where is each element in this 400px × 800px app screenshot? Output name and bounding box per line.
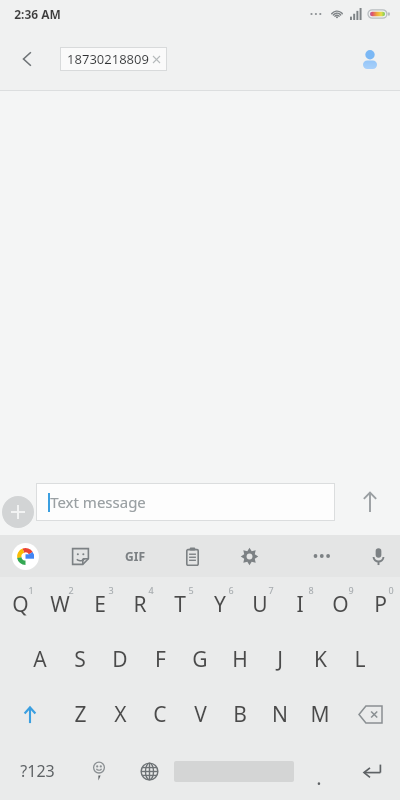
button[interactable]: K <box>300 632 340 687</box>
button[interactable]: W <box>40 577 80 632</box>
button[interactable]: Back <box>6 37 50 81</box>
staticText: X <box>114 700 127 729</box>
button[interactable]: Change language <box>124 742 174 800</box>
staticText: K <box>314 645 327 674</box>
button[interactable]: GIF <box>118 535 152 577</box>
staticText: G <box>192 645 208 674</box>
button[interactable]: Stickers <box>64 535 96 577</box>
button[interactable]: Settings <box>233 535 265 577</box>
button[interactable]: N <box>260 687 300 742</box>
staticText: J <box>277 645 283 674</box>
staticText: 18730218809 <box>67 50 149 68</box>
staticText: 2:36 AM <box>14 6 61 22</box>
staticText: 7 <box>268 584 274 596</box>
staticText: 0 <box>388 584 394 596</box>
button[interactable]: O <box>320 577 360 632</box>
staticText: Z <box>74 700 87 729</box>
button[interactable]: Contacts <box>348 37 392 81</box>
staticText: S <box>74 645 86 674</box>
button[interactable]: I <box>280 577 320 632</box>
button[interactable]: B <box>220 687 260 742</box>
button[interactable]: C <box>140 687 180 742</box>
staticText: F <box>155 645 166 674</box>
button[interactable]: More options <box>306 535 338 577</box>
staticText: 9 <box>348 584 354 596</box>
button[interactable]: A <box>20 632 60 687</box>
button[interactable]: Z <box>60 687 100 742</box>
button[interactable]: Space <box>174 742 294 800</box>
button[interactable]: J <box>260 632 300 687</box>
staticText: Y <box>214 590 226 619</box>
button[interactable]: Text message <box>36 483 335 521</box>
staticText: Text message <box>50 492 146 512</box>
staticText: GIF <box>125 548 145 564</box>
staticText: V <box>194 700 207 729</box>
button[interactable]: R <box>120 577 160 632</box>
staticText: 4 <box>148 584 154 596</box>
staticText: C <box>153 700 167 729</box>
staticText: L <box>354 645 366 674</box>
button[interactable]: . <box>294 742 344 800</box>
button[interactable]: T <box>160 577 200 632</box>
staticText: W <box>50 590 70 619</box>
staticText: H <box>232 645 248 674</box>
staticText: 5 <box>188 584 194 596</box>
button[interactable]: S <box>60 632 100 687</box>
staticText: E <box>94 590 106 619</box>
button[interactable]: Q <box>0 577 40 632</box>
button[interactable]: 18730218809 <box>60 47 167 71</box>
button[interactable]: ?123 <box>0 742 74 800</box>
staticText: M <box>310 700 330 729</box>
button[interactable]: Voice input <box>362 535 394 577</box>
button[interactable]: P <box>360 577 400 632</box>
staticText: P <box>374 590 387 619</box>
staticText: N <box>272 700 288 729</box>
button[interactable]: V <box>180 687 220 742</box>
button[interactable]: U <box>240 577 280 632</box>
staticText: 6 <box>228 584 234 596</box>
staticText: 1 <box>28 584 34 596</box>
button[interactable]: Emoji and comma <box>74 742 124 800</box>
staticText: 8 <box>308 584 314 596</box>
button[interactable]: Enter <box>344 742 400 800</box>
staticText: ?123 <box>20 760 55 782</box>
staticText: D <box>112 645 128 674</box>
button[interactable]: D <box>100 632 140 687</box>
staticText: O <box>332 590 349 619</box>
button[interactable]: Send <box>348 480 392 524</box>
button[interactable]: M <box>300 687 340 742</box>
button[interactable]: Y <box>200 577 240 632</box>
button[interactable]: Google <box>9 535 41 577</box>
staticText: I <box>296 590 304 619</box>
staticText: 2 <box>68 584 74 596</box>
staticText: 3 <box>108 584 114 596</box>
button[interactable]: Backspace <box>340 687 400 742</box>
staticText: Q <box>12 590 29 619</box>
button[interactable]: X <box>100 687 140 742</box>
button[interactable]: Add attachment <box>2 496 34 528</box>
button[interactable]: F <box>140 632 180 687</box>
staticText: R <box>133 590 147 619</box>
staticText: U <box>252 590 268 619</box>
staticText: A <box>33 645 47 674</box>
button[interactable]: L <box>340 632 380 687</box>
button[interactable]: Clipboard <box>176 535 208 577</box>
staticText: . <box>316 764 322 791</box>
button[interactable]: H <box>220 632 260 687</box>
button[interactable]: E <box>80 577 120 632</box>
staticText: T <box>174 590 186 619</box>
button[interactable]: G <box>180 632 220 687</box>
button[interactable]: Shift <box>0 687 60 742</box>
staticText: B <box>233 700 247 729</box>
